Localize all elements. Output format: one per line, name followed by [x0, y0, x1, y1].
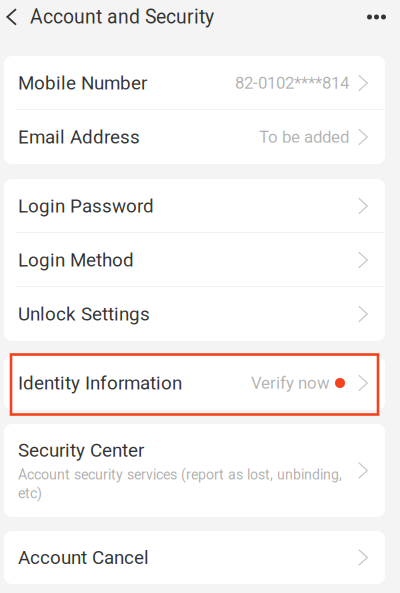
button[interactable]: Identity Information — [4, 356, 385, 410]
button[interactable]: Account Cancel — [4, 531, 385, 584]
staticText: Login Password — [18, 195, 154, 217]
staticText: Account and Security — [30, 6, 214, 28]
staticText: 82-0102****814 — [235, 73, 349, 93]
staticText: To be added — [259, 127, 349, 147]
button[interactable]: More options — [353, 0, 400, 34]
staticText: Email Address — [18, 126, 140, 148]
staticText: Security Center — [18, 439, 144, 461]
button[interactable]: Login Password — [4, 179, 385, 233]
button[interactable]: Unlock Settings — [4, 287, 385, 341]
staticText: Unlock Settings — [18, 303, 150, 325]
staticText: Login Method — [18, 249, 134, 271]
staticText: Verify now — [251, 373, 330, 393]
button[interactable]: Mobile Number — [4, 56, 385, 110]
button[interactable]: Security Center — [4, 424, 385, 517]
button[interactable]: Back — [0, 0, 23, 34]
staticText: Account security services (report as los… — [18, 466, 342, 502]
button[interactable]: Email Address — [4, 110, 385, 164]
button[interactable]: Login Method — [4, 233, 385, 287]
staticText: Identity Information — [18, 372, 182, 394]
staticText: Account Cancel — [18, 546, 149, 568]
staticText: Mobile Number — [18, 72, 147, 94]
